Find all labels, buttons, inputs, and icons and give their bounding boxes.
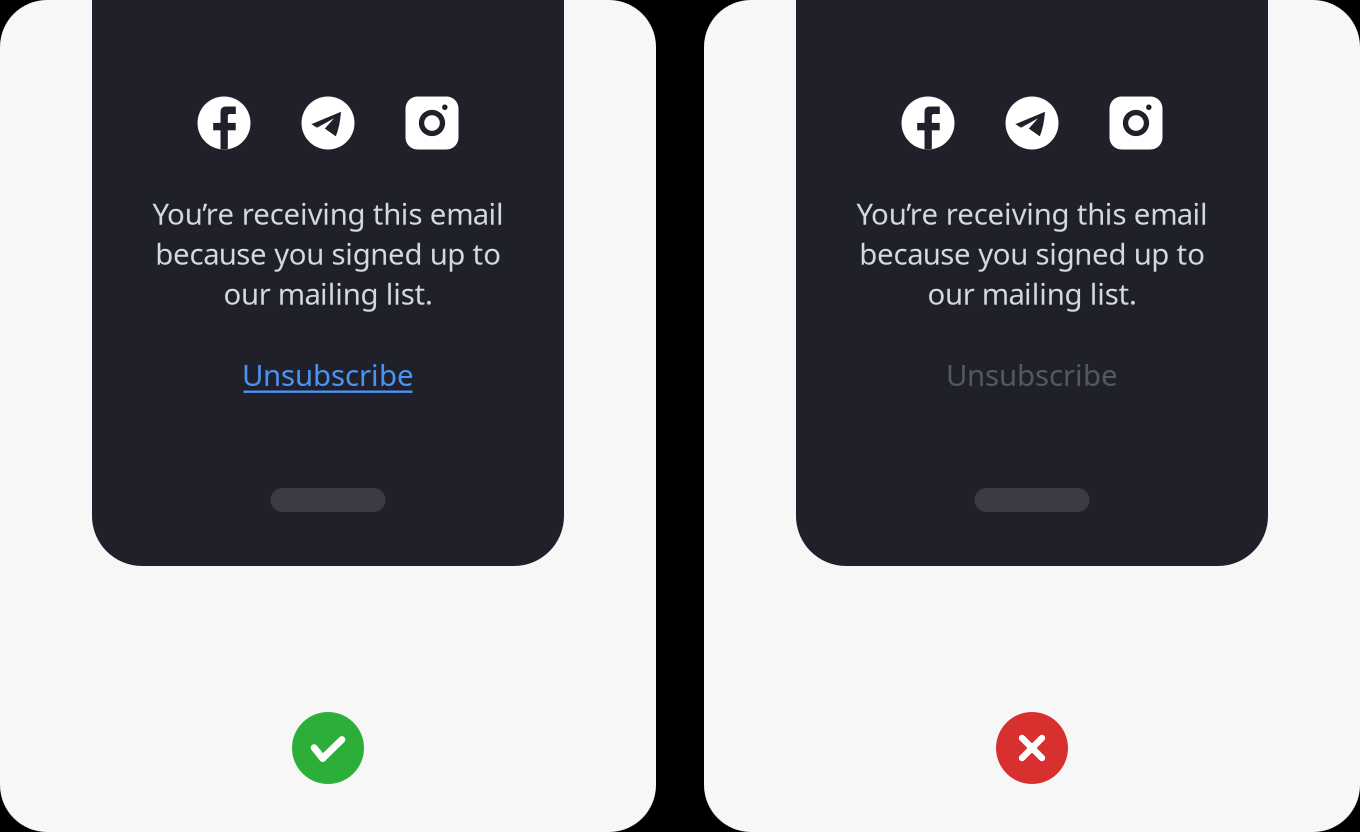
staticText: Unsubscribe	[946, 355, 1118, 394]
button[interactable]: Telegram	[301, 96, 354, 149]
staticText: You’re receiving this email because you …	[856, 194, 1208, 313]
button[interactable]: Facebook	[197, 96, 250, 149]
button[interactable]: Instagram	[405, 96, 458, 149]
staticText: Unsubscribe	[242, 355, 414, 394]
button[interactable]: Instagram	[1109, 96, 1162, 149]
button[interactable]: Unsubscribe	[92, 354, 564, 394]
button[interactable]: Facebook	[901, 96, 954, 149]
button[interactable]: Telegram	[1005, 96, 1058, 149]
staticText: You’re receiving this email because you …	[152, 194, 504, 313]
